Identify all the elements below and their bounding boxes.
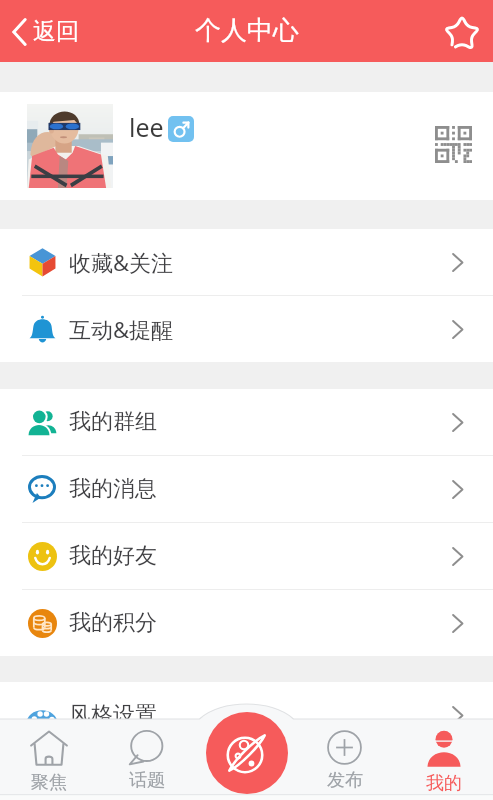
staticText: 我的消息 xyxy=(69,475,157,503)
button[interactable]: 我的积分 xyxy=(0,590,493,656)
button[interactable]: 我的群组 xyxy=(0,389,493,455)
staticText: 收藏&关注 xyxy=(69,247,174,277)
button[interactable]: 聚焦 xyxy=(0,719,98,800)
staticText: 我的 xyxy=(426,772,462,795)
staticText: 互动&提醒 xyxy=(69,314,174,344)
staticText: 风格设置 xyxy=(69,701,157,729)
staticText: 聚焦 xyxy=(31,771,67,794)
staticText: 发布 xyxy=(327,769,363,792)
button[interactable]: 发布 xyxy=(295,719,394,800)
staticText: lee xyxy=(129,110,164,144)
button[interactable]: lee xyxy=(0,92,493,200)
button[interactable]: 返回 xyxy=(0,9,93,54)
button[interactable]: QR code xyxy=(428,119,479,170)
button[interactable]: 我的 xyxy=(394,719,493,800)
staticText: 个人中心 xyxy=(195,14,299,47)
staticText: 话题 xyxy=(129,769,165,792)
staticText: 我的积分 xyxy=(69,609,157,637)
button[interactable]: 风格设置 xyxy=(0,682,493,748)
staticText: 我的群组 xyxy=(69,408,157,436)
button[interactable]: 我的好友 xyxy=(0,523,493,589)
button[interactable]: Discover xyxy=(206,712,288,794)
button[interactable]: Favorite xyxy=(431,3,493,59)
button[interactable]: 收藏&关注 xyxy=(0,229,493,295)
button[interactable]: 互动&提醒 xyxy=(0,296,493,362)
staticText: 返回 xyxy=(33,17,79,46)
button[interactable]: 话题 xyxy=(98,719,196,800)
staticText: 我的好友 xyxy=(69,542,157,570)
button[interactable]: 我的消息 xyxy=(0,456,493,522)
